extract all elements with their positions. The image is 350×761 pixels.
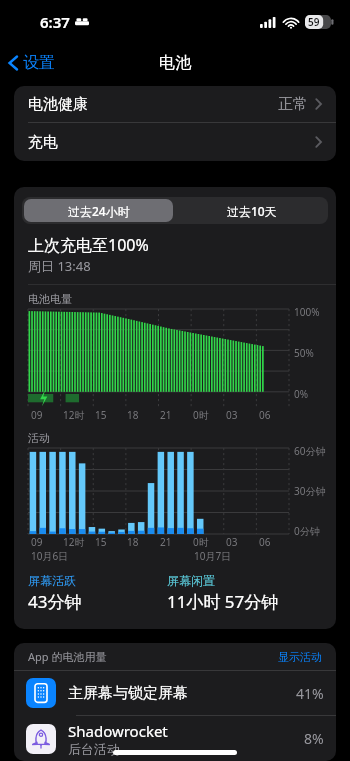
staticText: 21 <box>160 408 172 422</box>
staticText: 过去10天 <box>227 203 277 219</box>
staticText: App 的电池用量 <box>28 649 107 664</box>
staticText: 18 <box>127 535 139 549</box>
button[interactable]: 过去10天 <box>175 197 328 224</box>
staticText: 15 <box>95 408 107 422</box>
staticText: 0% <box>294 387 309 401</box>
staticText: 6:37 <box>40 12 70 32</box>
staticText: 电池健康 <box>28 95 88 114</box>
button[interactable]: 过去24小时 <box>24 199 173 222</box>
staticText: 41% <box>296 684 324 703</box>
staticText: 0时 <box>193 535 209 549</box>
staticText: 后台活动 <box>68 741 120 757</box>
staticText: 屏幕活跃 <box>28 573 76 588</box>
staticText: 60分钟 <box>294 444 326 458</box>
staticText: 屏幕闲置 <box>167 573 215 588</box>
staticText: 06 <box>259 535 271 549</box>
staticText: 15 <box>95 535 107 549</box>
staticText: 30分钟 <box>294 484 326 498</box>
staticText: 12时 <box>63 535 85 549</box>
staticText: 上次充电至100% <box>28 234 149 256</box>
staticText: 活动 <box>28 431 50 445</box>
staticText: 正常 <box>278 95 308 114</box>
staticText: 100% <box>294 305 320 319</box>
staticText: 09 <box>31 535 43 549</box>
staticText: 电池电量 <box>28 292 72 306</box>
staticText: 10月7日 <box>194 549 232 563</box>
button[interactable]: 显示活动 <box>278 650 322 664</box>
staticText: Shadowrocket <box>68 721 168 741</box>
staticText: 充电 <box>28 133 58 152</box>
staticText: 设置 <box>23 53 55 73</box>
other: Shadowrocket <box>26 724 56 754</box>
staticText: 18 <box>127 408 139 422</box>
staticText: 59 <box>308 15 320 29</box>
staticText: 50% <box>294 346 314 360</box>
staticText: 0分钟 <box>294 524 320 538</box>
button[interactable]: Shadowrocket <box>14 716 336 761</box>
button[interactable]: 充电 <box>14 123 336 161</box>
staticText: 43分钟 <box>28 590 82 613</box>
staticText: 12时 <box>63 408 85 422</box>
button[interactable]: 主屏幕与锁定屏幕 <box>14 671 336 715</box>
staticText: 周日 13:48 <box>28 257 91 275</box>
other: 主屏幕与锁定屏幕 <box>26 678 56 708</box>
staticText: 10月6日 <box>31 549 69 563</box>
staticText: 11小时 57分钟 <box>167 590 279 613</box>
staticText: 03 <box>226 535 238 549</box>
staticText: 主屏幕与锁定屏幕 <box>68 684 188 703</box>
staticText: 电池 <box>159 53 191 73</box>
staticText: 21 <box>160 535 172 549</box>
staticText: 8% <box>304 729 324 748</box>
staticText: 0时 <box>193 408 209 422</box>
staticText: 03 <box>226 408 238 422</box>
staticText: 显示活动 <box>278 650 322 664</box>
button[interactable]: 设置 <box>0 49 63 77</box>
staticText: 09 <box>31 408 43 422</box>
button[interactable]: 电池健康 <box>14 86 336 122</box>
staticText: 过去24小时 <box>68 203 130 219</box>
staticText: 06 <box>259 408 271 422</box>
